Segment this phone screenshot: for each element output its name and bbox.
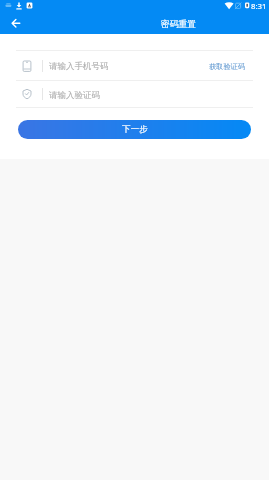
staticText: 获取验证码 <box>209 62 245 71</box>
staticText: 下一步 <box>122 124 148 135</box>
staticText: 请输入验证码 <box>49 90 100 101</box>
button[interactable]: 下一步 <box>18 120 251 139</box>
button[interactable]: 获取验证码 <box>206 57 248 74</box>
button[interactable]: 请输入手机号码 <box>0 51 269 80</box>
button[interactable]: 请输入验证码 <box>0 81 269 107</box>
staticText: 8:31 <box>251 1 267 12</box>
button[interactable]: Back <box>4 12 28 34</box>
staticText: 请输入手机号码 <box>49 61 109 72</box>
staticText: 密码重置 <box>161 19 196 30</box>
